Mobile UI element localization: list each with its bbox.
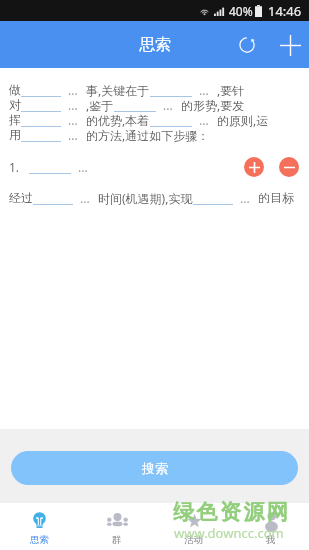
staticText: ... — [80, 190, 90, 205]
button[interactable]: Refresh — [228, 26, 266, 64]
staticText: 40% — [229, 3, 253, 19]
button[interactable]: Remove step — [279, 157, 299, 177]
staticText: 对 — [9, 97, 21, 112]
staticText: 我 — [266, 534, 276, 546]
staticText: ,要针 — [217, 82, 245, 97]
staticText: ,鉴于 — [86, 97, 114, 112]
staticText: 的方法,通过如下步骤： — [86, 127, 210, 142]
staticText: 1. — [9, 159, 20, 175]
staticText: ... — [68, 112, 78, 127]
staticText: 搜索 — [142, 460, 168, 476]
staticText: www.downcc.com — [174, 524, 284, 542]
staticText: 用 — [9, 127, 21, 142]
staticText: 挥 — [9, 112, 21, 127]
staticText: ... — [240, 190, 250, 205]
staticText: ... — [68, 127, 78, 142]
button[interactable]: 活动 — [155, 503, 232, 550]
button[interactable]: 思索 — [0, 503, 78, 550]
staticText: ... — [68, 82, 78, 97]
staticText: 时间(机遇期),实现 — [98, 190, 193, 205]
staticText: 做 — [9, 82, 21, 97]
staticText: 经过 — [9, 190, 33, 205]
button[interactable]: Add step — [244, 157, 264, 177]
button[interactable]: 搜索 — [11, 451, 298, 485]
staticText: ... — [199, 112, 209, 127]
staticText: 的形势,要发 — [181, 97, 245, 112]
staticText: ... — [68, 97, 78, 112]
button[interactable]: 群 — [78, 503, 155, 550]
staticText: 的原则,运 — [217, 112, 269, 127]
staticText: 的优势,本着 — [86, 112, 150, 127]
button[interactable]: Add — [271, 26, 309, 64]
staticText: ... — [78, 159, 88, 175]
staticText: 14:46 — [268, 2, 302, 20]
staticText: 群 — [112, 534, 122, 546]
staticText: ... — [199, 82, 209, 97]
staticText: 绿色资源网 — [172, 499, 289, 525]
staticText: ... — [163, 97, 173, 112]
staticText: 活动 — [184, 534, 203, 546]
button[interactable]: 我 — [232, 503, 309, 550]
staticText: 思索 — [139, 35, 171, 55]
staticText: 思索 — [30, 534, 49, 546]
staticText: 的目标 — [258, 190, 294, 205]
staticText: 事,关键在于 — [86, 82, 150, 97]
